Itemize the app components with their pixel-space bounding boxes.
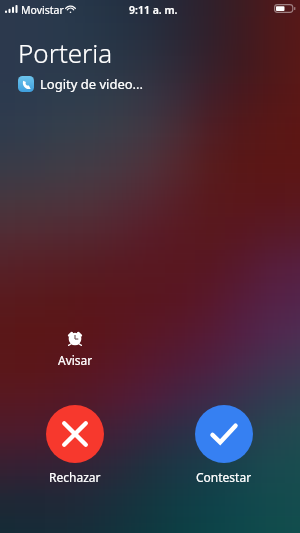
staticText: Rechazar: [49, 469, 101, 485]
button[interactable]: Avisar: [46, 330, 104, 368]
other: Avisar: [67, 330, 83, 346]
button[interactable]: Contestar: [195, 405, 253, 485]
button[interactable]: Rechazar: [46, 405, 104, 485]
staticText: Porteria: [18, 35, 113, 70]
staticText: Contestar: [196, 469, 252, 485]
staticText: Logity de video...: [40, 75, 144, 93]
staticText: Movistar: [21, 3, 64, 17]
staticText: Avisar: [58, 352, 93, 368]
staticText: 9:11 a. m.: [129, 3, 178, 17]
